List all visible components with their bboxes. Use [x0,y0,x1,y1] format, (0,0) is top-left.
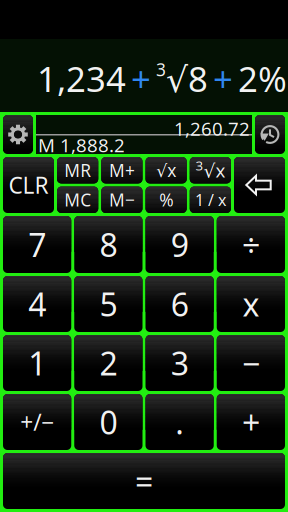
staticText: . [175,401,184,443]
button[interactable]: 9 [145,216,214,273]
staticText: x [242,283,259,325]
staticText: M+ [109,159,135,182]
staticText: 3 [156,58,166,81]
staticText: 1,234 [37,55,126,101]
staticText: MC [64,188,91,211]
staticText: − [242,342,260,384]
staticText: 6 [171,283,189,325]
button[interactable]: + [217,394,285,450]
button[interactable]: √x [145,157,187,183]
staticText: M− [109,188,135,211]
staticText: 4 [28,283,46,325]
button[interactable]: % [145,186,187,213]
button[interactable]: 3 [190,157,231,183]
staticText: 8 [99,223,117,266]
button[interactable]: = [3,453,285,509]
staticText: 5 [99,283,117,325]
staticText: √x [156,159,176,182]
button[interactable]: 5 [74,276,142,332]
button[interactable]: 1 [3,335,71,391]
button[interactable]: − [217,335,285,391]
button[interactable]: x [217,276,285,332]
button[interactable]: M+ [101,157,142,183]
staticText: % [159,188,173,211]
staticText: ÷ [242,223,260,266]
button[interactable]: MR [57,157,98,183]
button[interactable]: . [145,394,214,450]
button[interactable]: M− [101,186,142,213]
button[interactable]: History [255,115,285,154]
button[interactable]: 8 [74,216,142,273]
staticText: + [242,401,260,443]
staticText: √8 [166,55,208,101]
staticText: = [135,460,153,502]
button[interactable]: 6 [145,276,214,332]
button[interactable]: Backspace [234,157,285,213]
staticText: 1,260.72 [174,116,250,141]
staticText: 3 [195,156,203,174]
button[interactable]: +/− [3,394,71,450]
button[interactable]: 4 [3,276,71,332]
button[interactable]: 3 [145,335,214,391]
staticText: √x [203,158,225,183]
button[interactable]: MC [57,186,98,213]
staticText: 1 / x [195,189,226,210]
staticText: 9 [171,223,189,266]
staticText: 1 [28,342,46,384]
staticText: 2% [238,55,287,101]
button[interactable]: CLR [3,157,54,213]
staticText: + [213,55,233,101]
button[interactable]: 0 [74,394,142,450]
staticText: 3 [171,342,189,384]
staticText: 2 [99,342,117,384]
button[interactable]: 2 [74,335,142,391]
button[interactable]: Settings [3,115,33,154]
button[interactable]: ÷ [217,216,285,273]
button[interactable]: 1 / x [190,186,231,213]
button[interactable]: 7 [3,216,71,273]
staticText: +/− [20,407,54,437]
staticText: MR [64,159,91,182]
staticText: + [131,55,151,101]
staticText: 0 [99,401,117,443]
staticText: M 1,888.2 [38,132,125,157]
staticText: CLR [8,170,48,200]
staticText: 7 [28,223,46,266]
